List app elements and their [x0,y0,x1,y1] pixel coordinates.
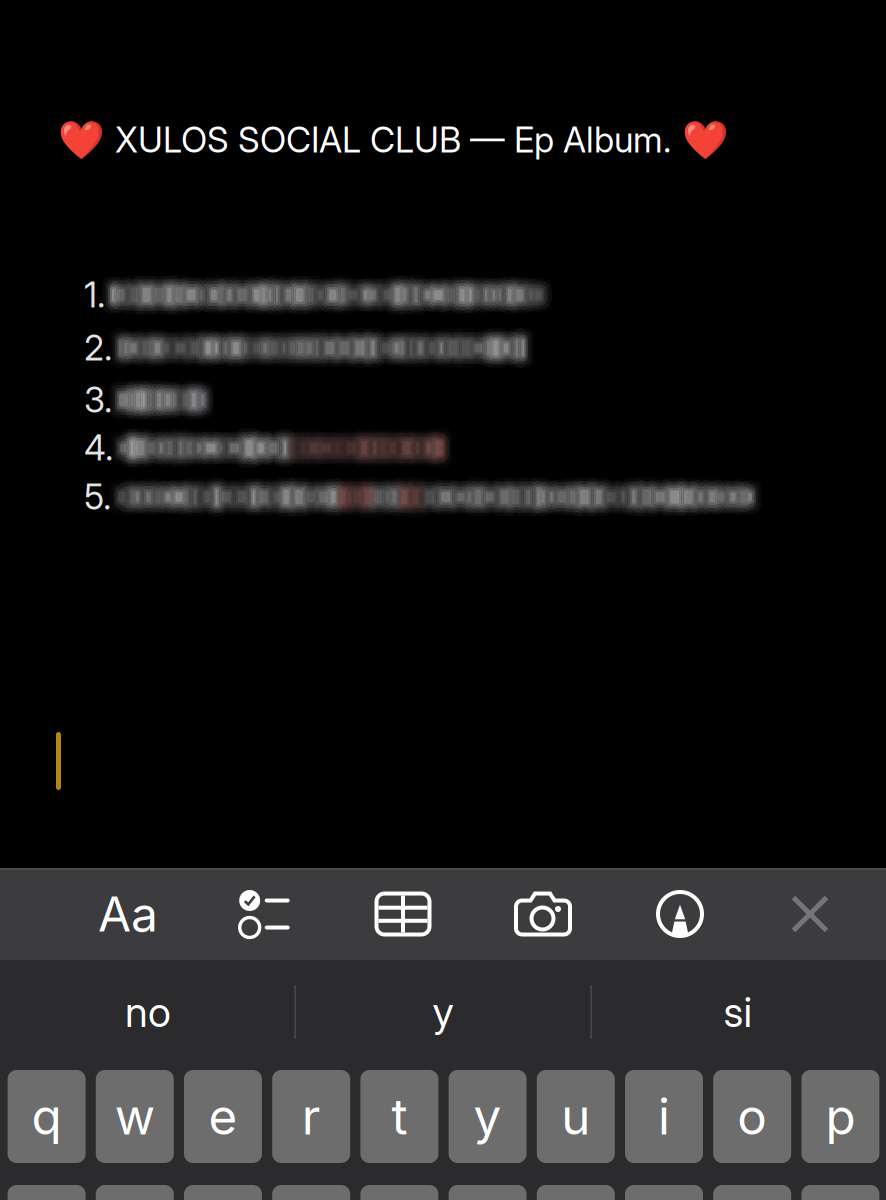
button[interactable]: j [537,1185,615,1200]
button[interactable]: w [96,1070,174,1163]
button[interactable]: o [713,1070,791,1163]
staticText: i [658,1087,670,1146]
button[interactable]: ñ [801,1185,879,1200]
button[interactable]: u [537,1070,615,1163]
staticText: ❤️ [58,118,104,162]
staticText: Aa [98,885,158,943]
staticText: 5. [84,476,111,518]
staticText: 1. [84,274,105,316]
staticText: no [125,987,171,1037]
button[interactable]: g [360,1185,438,1200]
staticText: u [561,1087,590,1146]
button[interactable]: y [295,962,590,1062]
button[interactable]: Camera [475,868,611,960]
button[interactable]: Checklist [197,868,333,960]
button[interactable]: d [184,1185,262,1200]
button[interactable]: y [449,1070,527,1163]
staticText: w [115,1087,155,1146]
button[interactable]: Text format [60,868,196,960]
staticText: ❤️ [682,118,728,162]
staticText: 3. [84,379,112,421]
button[interactable]: r [272,1070,350,1163]
staticText: si [723,987,752,1037]
button[interactable]: e [184,1070,262,1163]
staticText: r [302,1087,321,1146]
button[interactable]: i [625,1070,703,1163]
staticText: 4. [84,427,113,469]
button[interactable]: si [590,962,885,1062]
button[interactable]: f [272,1185,350,1200]
staticText: 2. [84,327,112,369]
staticText: e [208,1087,237,1146]
button[interactable]: t [360,1070,438,1163]
button[interactable]: Table [335,868,471,960]
button[interactable]: k [625,1185,703,1200]
staticText: p [825,1087,855,1146]
staticText: XULOS SOCIAL CLUB — Ep Album. [115,119,671,161]
button[interactable]: l [713,1185,791,1200]
button[interactable]: no [0,962,295,1062]
button[interactable]: h [449,1185,527,1200]
button[interactable]: Hide keyboard [742,868,878,960]
staticText: y [474,1087,502,1146]
staticText: y [432,987,453,1037]
staticText: q [32,1087,62,1146]
button[interactable]: q [8,1070,86,1163]
button[interactable]: Markup [612,868,748,960]
staticText: t [391,1087,407,1146]
button[interactable]: s [96,1185,174,1200]
staticText: o [737,1087,767,1146]
button[interactable]: p [801,1070,879,1163]
button[interactable]: a [8,1185,86,1200]
